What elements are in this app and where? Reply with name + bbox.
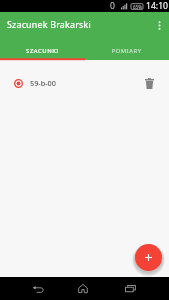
- button[interactable]: POMIARY: [84, 38, 169, 60]
- button[interactable]: Add: [135, 244, 162, 271]
- button[interactable]: Back: [26, 277, 49, 300]
- button[interactable]: Recents: [119, 277, 142, 300]
- staticText: POMIARY: [111, 47, 142, 55]
- button[interactable]: Delete: [137, 71, 161, 95]
- button[interactable]: More options: [150, 16, 169, 35]
- button[interactable]: SZACUNKI: [0, 38, 84, 60]
- staticText: Szacunek Brakarski: [7, 18, 91, 30]
- staticText: 65%: [133, 4, 142, 10]
- staticText: 0: [110, 0, 115, 12]
- staticText: 14:10: [146, 0, 168, 12]
- staticText: 59-b-00: [30, 78, 56, 88]
- button[interactable]: Home: [72, 277, 94, 300]
- staticText: SZACUNKI: [26, 47, 59, 55]
- button[interactable]: 59-b-00: [0, 60, 169, 106]
